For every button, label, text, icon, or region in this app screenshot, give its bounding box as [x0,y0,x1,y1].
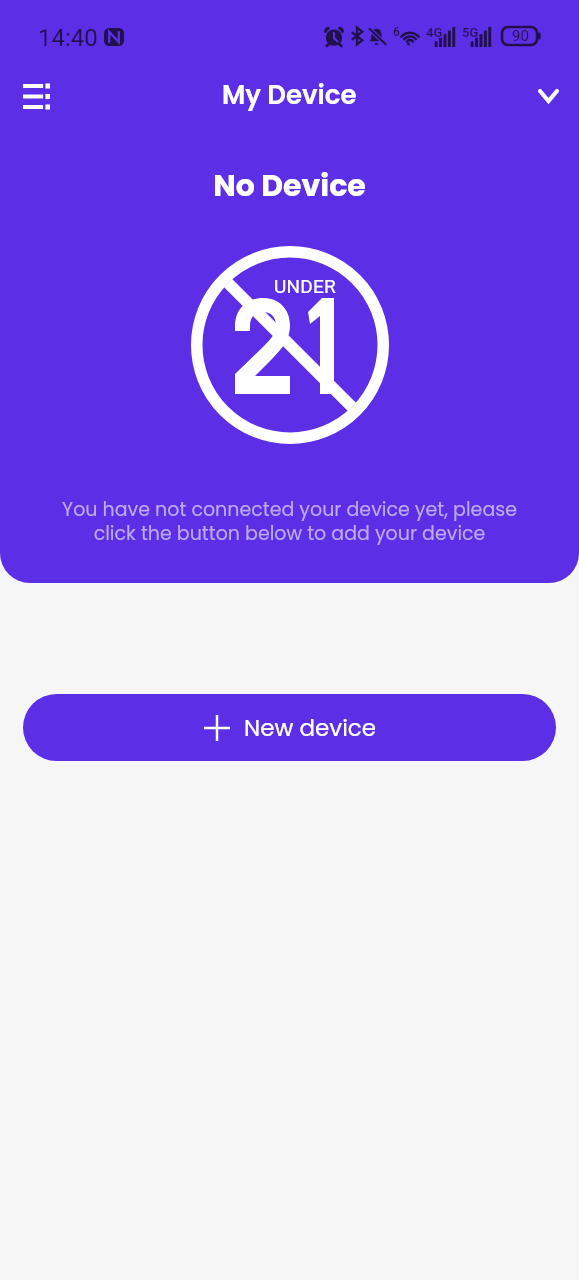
staticText: My Device [222,77,357,113]
staticText: 4G [426,25,443,40]
button[interactable]: Menu [9,69,64,124]
staticText: 6 [393,25,400,39]
staticText: New device [244,712,377,744]
button[interactable]: New device [23,694,556,761]
staticText: You have not connected your device yet, … [46,496,533,546]
staticText: 14:40 [38,24,98,52]
staticText: No Device [0,165,579,207]
button[interactable]: Expand [522,70,574,122]
staticText: 5G [462,25,479,40]
staticText: UNDER [274,275,336,297]
staticText: 90 [512,27,529,45]
